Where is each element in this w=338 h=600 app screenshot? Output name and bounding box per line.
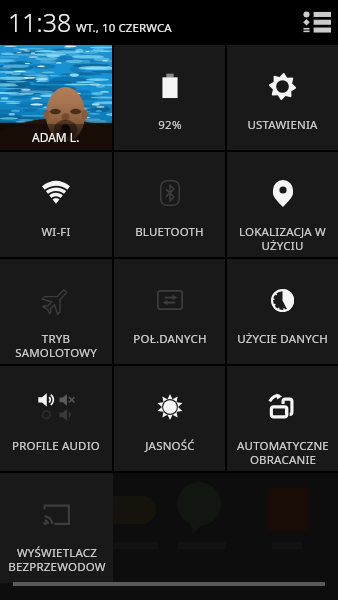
button[interactable]: WYŚWIETLACZ BEZPRZEWODOW [0,473,113,583]
staticText: POŁ.DANYCH [133,331,207,347]
staticText: ADAM L. [32,129,80,145]
staticText: UŻYCIE DANYCH [237,331,328,347]
button[interactable]: LOKALIZACJA W UŻYCIU [227,152,338,257]
button[interactable]: POŁ.DANYCH [114,259,225,364]
staticText: JASNOŚĆ [145,438,195,454]
staticText: PROFILE AUDIO [12,438,100,454]
button[interactable]: BLUETOOTH [114,152,225,257]
staticText: 92% [158,117,182,133]
button[interactable]: UŻYCIE DANYCH [227,259,338,364]
staticText: AUTOMATYCZNE OBRACANIE [237,438,329,467]
staticText: 11:38 [8,5,72,39]
button[interactable]: WI-FI [0,152,112,257]
button[interactable]: ADAM L. [0,45,112,150]
button[interactable]: USTAWIENIA [227,45,338,150]
staticText: LOKALIZACJA W UŻYCIU [239,224,326,253]
staticText: WT., 10 CZERWCA [76,20,172,36]
staticText: WI-FI [41,224,71,240]
button[interactable]: 92% [114,45,225,150]
button[interactable]: TRYB SAMOLOTOWY [0,259,112,364]
button[interactable]: JASNOŚĆ [114,366,225,471]
button[interactable]: PROFILE AUDIO [0,366,112,471]
button[interactable]: Quick settings list [302,10,331,34]
button[interactable]: AUTOMATYCZNE OBRACANIE [227,366,338,471]
staticText: TRYB SAMOLOTOWY [15,331,97,360]
staticText: BLUETOOTH [135,224,204,240]
staticText: WYŚWIETLACZ BEZPRZEWODOW [8,545,106,574]
staticText: USTAWIENIA [247,117,318,133]
